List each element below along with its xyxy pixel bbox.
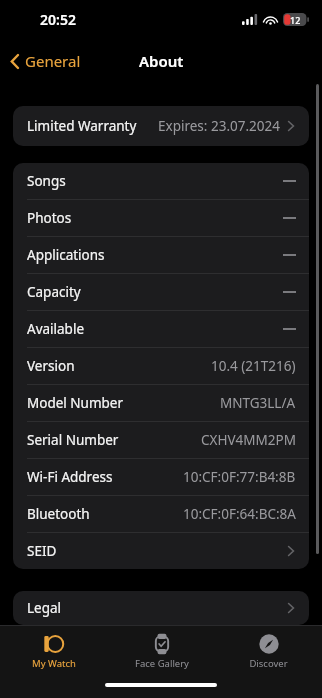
staticText: About <box>139 51 184 71</box>
staticText: Capacity <box>27 283 81 301</box>
button[interactable]: Applications <box>13 237 309 273</box>
button[interactable]: Songs <box>13 163 309 199</box>
button[interactable]: General <box>0 47 89 75</box>
staticText: Limited Warranty <box>27 117 137 135</box>
button[interactable]: Discover <box>215 626 322 676</box>
button[interactable]: Photos <box>13 200 309 236</box>
staticText: Legal <box>27 599 62 617</box>
staticText: Songs <box>27 172 66 190</box>
staticText: Applications <box>27 246 105 264</box>
button[interactable]: Legal <box>13 591 309 625</box>
button[interactable]: Limited Warranty <box>13 106 309 146</box>
staticText: Available <box>27 320 84 338</box>
staticText: Version <box>27 357 75 375</box>
staticText: Face Gallery <box>135 657 189 670</box>
button[interactable]: Capacity <box>13 274 309 310</box>
button[interactable]: Bluetooth <box>13 496 309 532</box>
staticText: CXHV4MM2PM <box>201 431 296 449</box>
staticText: Wi-Fi Address <box>27 468 113 486</box>
button[interactable]: SEID <box>13 533 309 569</box>
staticText: Serial Number <box>27 431 119 449</box>
staticText: 10:CF:0F:77:B4:8B <box>183 468 296 486</box>
staticText: MNTG3LL/A <box>220 394 296 412</box>
staticText: Model Number <box>27 394 124 412</box>
staticText: SEID <box>27 542 57 560</box>
button[interactable]: Available <box>13 311 309 347</box>
staticText: General <box>25 51 81 71</box>
staticText: Photos <box>27 209 72 227</box>
staticText: My Watch <box>32 657 76 670</box>
button[interactable]: Face Gallery <box>108 626 215 676</box>
staticText: Discover <box>249 657 288 670</box>
staticText: Bluetooth <box>27 505 90 523</box>
staticText: 10:CF:0F:64:BC:8A <box>183 505 296 523</box>
staticText: Expires: 23.07.2024 <box>158 117 280 135</box>
staticText: 20:52 <box>40 10 76 29</box>
button[interactable]: Serial Number <box>13 422 309 458</box>
staticText: 12 <box>290 14 301 26</box>
button[interactable]: Wi-Fi Address <box>13 459 309 495</box>
staticText: 10.4 (21T216) <box>211 357 296 375</box>
button[interactable]: Model Number <box>13 385 309 421</box>
button[interactable]: Version <box>13 348 309 384</box>
button[interactable]: My Watch <box>0 626 108 676</box>
